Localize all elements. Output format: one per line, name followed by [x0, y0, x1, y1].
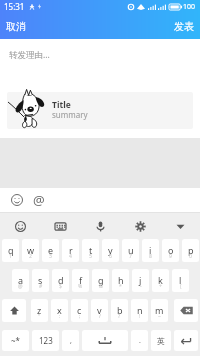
button[interactable]: m	[151, 299, 168, 322]
staticText: :	[59, 313, 61, 320]
staticText: h	[118, 274, 124, 286]
staticText: 转发理由...	[9, 49, 50, 61]
staticText: +	[159, 283, 162, 290]
button[interactable]: Backspace	[174, 299, 198, 322]
staticText: /	[99, 313, 101, 320]
staticText: n	[137, 304, 143, 316]
staticText: f	[79, 274, 83, 286]
button[interactable]: l	[172, 269, 189, 292]
staticText: 3	[49, 253, 52, 260]
staticText: 6	[109, 253, 112, 260]
staticText: d	[58, 274, 64, 286]
button[interactable]: y	[102, 239, 119, 262]
button[interactable]: i	[142, 239, 159, 262]
staticText: @	[33, 191, 45, 209]
staticText: -	[140, 283, 142, 290]
button[interactable]: Enter	[174, 330, 198, 351]
button[interactable]: Emoji	[0, 214, 40, 239]
staticText: w	[27, 244, 35, 256]
staticText: r	[69, 244, 73, 256]
button[interactable]: a	[12, 269, 29, 292]
button[interactable]: r	[62, 239, 79, 262]
button[interactable]: Voice input	[80, 214, 120, 239]
staticText: ~	[158, 313, 161, 320]
button[interactable]: o	[162, 239, 179, 262]
staticText: @	[18, 283, 23, 290]
staticText: 1	[9, 253, 12, 260]
staticText: z	[37, 304, 42, 316]
button[interactable]: Keyboard	[40, 214, 80, 239]
staticText: Title	[52, 99, 71, 111]
button[interactable]: f	[72, 269, 89, 292]
staticText: l	[179, 274, 182, 286]
button[interactable]: Emoji	[5, 188, 29, 212]
staticText: 2	[29, 253, 32, 260]
staticText: e	[48, 244, 54, 256]
staticText: u	[128, 244, 134, 256]
staticText: 5	[89, 253, 92, 260]
staticText: #	[39, 283, 43, 290]
staticText: .	[139, 336, 141, 346]
button[interactable]: j	[132, 269, 149, 292]
button[interactable]: Title	[7, 92, 193, 129]
staticText: o	[168, 244, 174, 256]
staticText: %	[78, 283, 83, 290]
button[interactable]: Shift	[2, 299, 26, 322]
button[interactable]: k	[152, 269, 169, 292]
staticText: &	[99, 283, 103, 290]
staticText: 英	[157, 336, 165, 346]
button[interactable]: 123	[32, 330, 59, 351]
staticText: j	[139, 274, 142, 286]
button[interactable]: Mention	[27, 188, 51, 212]
staticText: 0	[189, 253, 192, 260]
staticText: 8	[149, 253, 152, 260]
button[interactable]: h	[112, 269, 129, 292]
button[interactable]: p	[182, 239, 199, 262]
button[interactable]: b	[111, 299, 128, 322]
button[interactable]: ,	[62, 330, 79, 351]
staticText: b	[117, 304, 123, 316]
staticText: ?	[118, 313, 121, 320]
staticText: ~*	[11, 335, 20, 346]
staticText: k	[158, 274, 163, 286]
button[interactable]: 取消	[0, 13, 32, 39]
button[interactable]: g	[92, 269, 109, 292]
button[interactable]: e	[42, 239, 59, 262]
staticText: 4	[69, 253, 72, 260]
staticText: s	[38, 274, 43, 286]
staticText: t	[89, 244, 93, 256]
button[interactable]: z	[31, 299, 48, 322]
staticText: $	[59, 283, 62, 290]
button[interactable]: x	[51, 299, 68, 322]
button[interactable]: t	[82, 239, 99, 262]
button[interactable]: c	[71, 299, 88, 322]
button[interactable]: .	[131, 330, 148, 351]
button[interactable]: Hide keyboard	[160, 214, 200, 239]
staticText: ;	[79, 313, 81, 320]
button[interactable]: n	[131, 299, 148, 322]
button[interactable]: Settings	[120, 214, 160, 239]
button[interactable]: u	[122, 239, 139, 262]
staticText: "	[38, 313, 41, 320]
button[interactable]: Space	[82, 330, 128, 351]
staticText: ,	[70, 336, 72, 346]
staticText: m	[155, 304, 164, 316]
staticText: summary	[52, 109, 88, 120]
button[interactable]: 英	[151, 330, 171, 351]
staticText: !	[139, 313, 141, 320]
staticText: 7	[129, 253, 132, 260]
button[interactable]: s	[32, 269, 49, 292]
staticText: 15:31	[4, 1, 25, 12]
staticText: 100	[183, 2, 196, 12]
button[interactable]: 发表	[168, 13, 200, 39]
button[interactable]: q	[2, 239, 19, 262]
button[interactable]: v	[91, 299, 108, 322]
button[interactable]: w	[22, 239, 39, 262]
staticText: x	[57, 304, 62, 316]
button[interactable]: d	[52, 269, 69, 292]
staticText: 发表	[174, 20, 194, 33]
staticText: 123	[39, 335, 53, 346]
staticText: v	[97, 304, 102, 316]
staticText: p	[188, 244, 194, 256]
button[interactable]: ~*	[2, 330, 29, 351]
